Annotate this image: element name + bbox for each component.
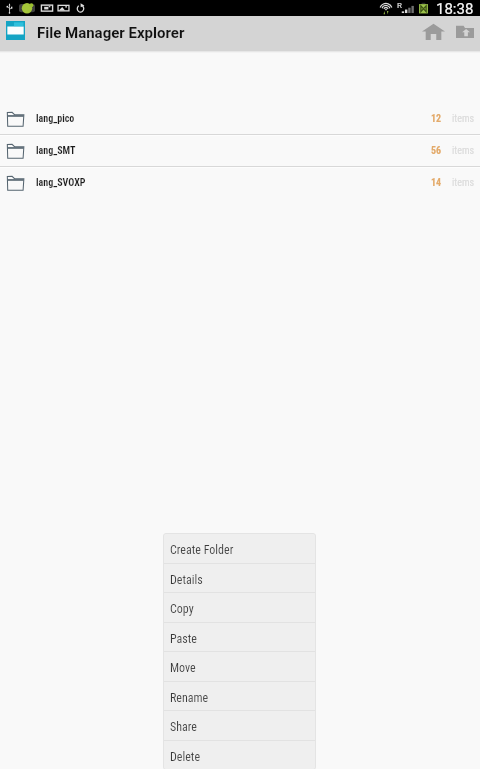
button[interactable]: Create Folder [163,533,316,562]
button[interactable]: File Manager Explorer [0,16,193,50]
staticText: R [397,1,402,10]
button[interactable]: Delete [163,740,316,769]
button[interactable]: Move [163,651,316,680]
staticText: Copy [170,602,194,616]
staticText: 12 [431,113,442,125]
button[interactable]: Rename [163,681,316,710]
staticText: lang_pico [36,113,75,125]
staticText: Delete [170,750,201,764]
button[interactable]: Share [163,710,316,739]
staticText: lang_SVOXP [36,177,86,189]
staticText: Create Folder [170,543,234,557]
staticText: 18:38 [436,0,474,16]
staticText: items [452,145,475,157]
staticText: Share [170,720,197,734]
staticText: Rename [170,691,209,705]
staticText: items [452,177,475,189]
button[interactable]: Go up one folder [449,16,480,50]
staticText: Move [170,661,196,675]
staticText: 14 [431,177,442,189]
staticText: Paste [170,632,197,646]
button[interactable]: lang_SMT [0,136,480,166]
button[interactable]: Details [163,563,316,592]
button[interactable]: Paste [163,622,316,651]
button[interactable]: lang_pico [0,104,480,134]
staticText: items [452,113,475,125]
button[interactable]: lang_SVOXP [0,168,480,198]
staticText: Details [170,573,203,587]
staticText: File Manager Explorer [37,24,185,42]
staticText: lang_SMT [36,145,76,157]
button[interactable]: Copy [163,592,316,621]
staticText: 56 [431,145,442,157]
button[interactable]: Home [417,16,449,50]
